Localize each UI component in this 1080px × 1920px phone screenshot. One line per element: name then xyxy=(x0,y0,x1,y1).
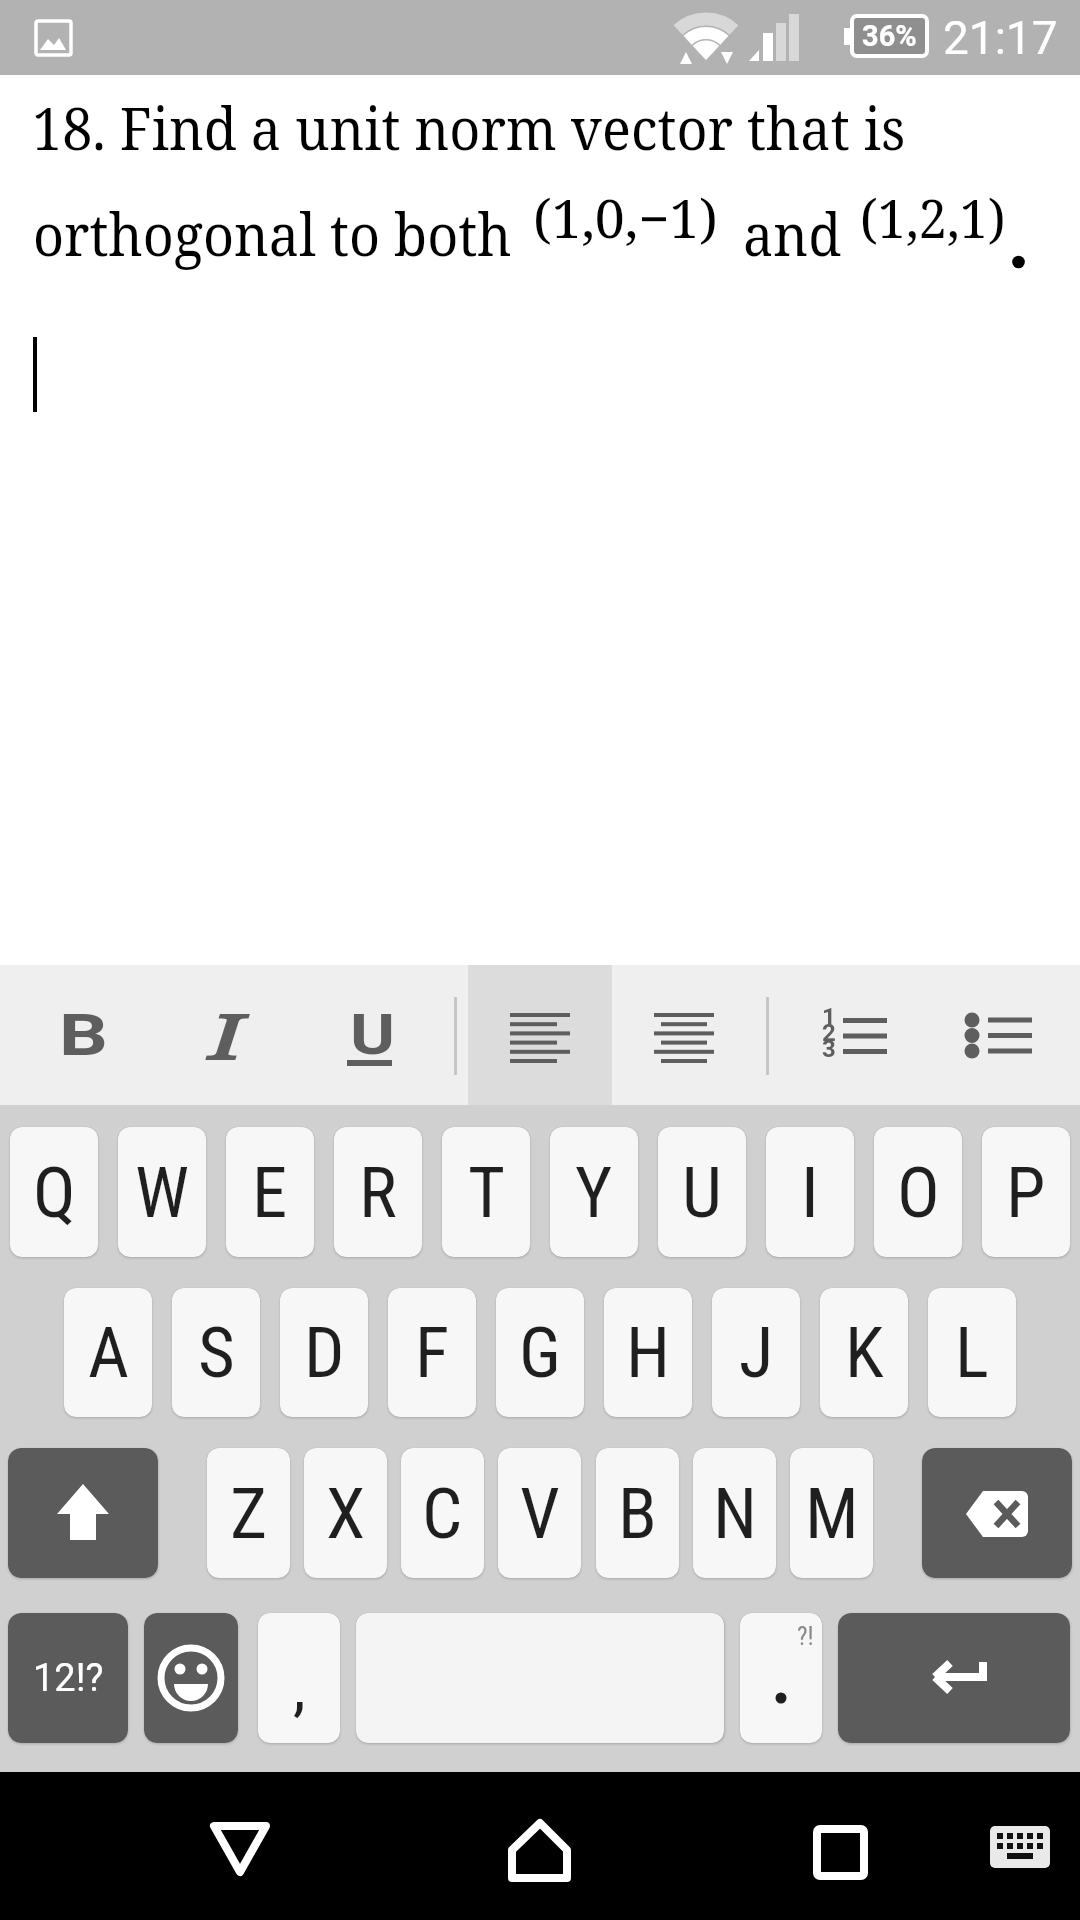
button[interactable]: S xyxy=(172,1288,260,1417)
button[interactable]: M xyxy=(790,1448,873,1578)
staticText: I xyxy=(209,993,243,1077)
button[interactable]: Y xyxy=(550,1127,638,1257)
button[interactable]: , xyxy=(258,1613,340,1743)
button[interactable] xyxy=(480,1772,600,1920)
button[interactable]: Q xyxy=(10,1127,98,1257)
staticText: E xyxy=(252,1151,288,1234)
button[interactable]: U xyxy=(658,1127,746,1257)
staticText: U xyxy=(350,1002,395,1068)
button[interactable] xyxy=(612,965,756,1105)
staticText: P xyxy=(1006,1151,1046,1234)
button[interactable]: X xyxy=(304,1448,387,1578)
button[interactable]: ?! xyxy=(740,1613,822,1743)
button[interactable] xyxy=(838,1613,1070,1743)
staticText: V xyxy=(520,1472,560,1555)
staticText: J xyxy=(739,1311,774,1394)
button[interactable] xyxy=(180,1772,300,1920)
button[interactable]: U xyxy=(300,965,445,1105)
staticText: , xyxy=(293,1650,306,1725)
staticText: X xyxy=(326,1472,366,1555)
staticText: F xyxy=(415,1311,450,1394)
button[interactable]: B xyxy=(10,965,155,1105)
button[interactable]: B xyxy=(596,1448,679,1578)
button[interactable] xyxy=(935,965,1075,1105)
staticText: O xyxy=(897,1151,940,1234)
staticText: D xyxy=(304,1311,345,1394)
staticText: R xyxy=(359,1151,397,1234)
button[interactable]: Z xyxy=(207,1448,290,1578)
button[interactable]: W xyxy=(118,1127,206,1257)
button[interactable]: F xyxy=(388,1288,476,1417)
button[interactable]: R xyxy=(334,1127,422,1257)
button[interactable] xyxy=(960,1772,1080,1920)
staticText: C xyxy=(422,1472,463,1555)
staticText: 1 xyxy=(822,1003,836,1031)
staticText: Y xyxy=(575,1151,613,1234)
staticText: Z xyxy=(230,1472,268,1555)
button[interactable]: P xyxy=(982,1127,1070,1257)
staticText: S xyxy=(198,1311,235,1394)
button[interactable]: I xyxy=(155,965,300,1105)
button[interactable] xyxy=(8,1448,158,1578)
button[interactable]: T xyxy=(442,1127,530,1257)
button[interactable]: V xyxy=(498,1448,581,1578)
button[interactable] xyxy=(468,965,612,1105)
staticText: G xyxy=(519,1311,561,1394)
staticText: (1,0,−1) xyxy=(533,182,718,253)
button[interactable]: H xyxy=(604,1288,692,1417)
button[interactable]: N xyxy=(693,1448,776,1578)
button[interactable]: C xyxy=(401,1448,484,1578)
staticText: 2 xyxy=(822,1019,836,1047)
staticText: K xyxy=(845,1311,884,1394)
button[interactable]: J xyxy=(712,1288,800,1417)
staticText: ?! xyxy=(797,1622,814,1651)
button[interactable]: K xyxy=(820,1288,908,1417)
staticText: I xyxy=(801,1151,819,1234)
button[interactable] xyxy=(790,965,930,1105)
button[interactable]: E xyxy=(226,1127,314,1257)
button[interactable]: G xyxy=(496,1288,584,1417)
staticText: H xyxy=(626,1311,671,1394)
staticText: B xyxy=(59,1001,109,1069)
staticText: A xyxy=(88,1311,129,1394)
staticText: N xyxy=(713,1472,757,1555)
staticText: B xyxy=(618,1472,657,1555)
staticText: T xyxy=(468,1151,505,1234)
staticText: U xyxy=(682,1151,722,1234)
staticText: orthogonal to both xyxy=(33,194,512,273)
staticText: W xyxy=(135,1151,190,1234)
staticText: Q xyxy=(33,1151,76,1234)
button[interactable]: D xyxy=(280,1288,368,1417)
button[interactable] xyxy=(780,1772,900,1920)
button[interactable]: L xyxy=(928,1288,1016,1417)
staticText: and xyxy=(743,194,842,273)
staticText: 12!? xyxy=(33,1656,104,1701)
staticText: (1,2,1) xyxy=(860,182,1006,253)
button[interactable]: A xyxy=(64,1288,152,1417)
button[interactable] xyxy=(922,1448,1072,1578)
staticText: M xyxy=(805,1472,859,1555)
button[interactable] xyxy=(144,1613,238,1743)
staticText: 18. Find a unit norm vector that is xyxy=(32,88,905,167)
button[interactable]: 12!? xyxy=(8,1613,128,1743)
staticText: 36% xyxy=(862,19,917,53)
staticText: L xyxy=(955,1311,989,1394)
button[interactable]: I xyxy=(766,1127,854,1257)
staticText: 3 xyxy=(822,1035,836,1063)
staticText: 21:17 xyxy=(943,11,1058,65)
button[interactable]: O xyxy=(874,1127,962,1257)
